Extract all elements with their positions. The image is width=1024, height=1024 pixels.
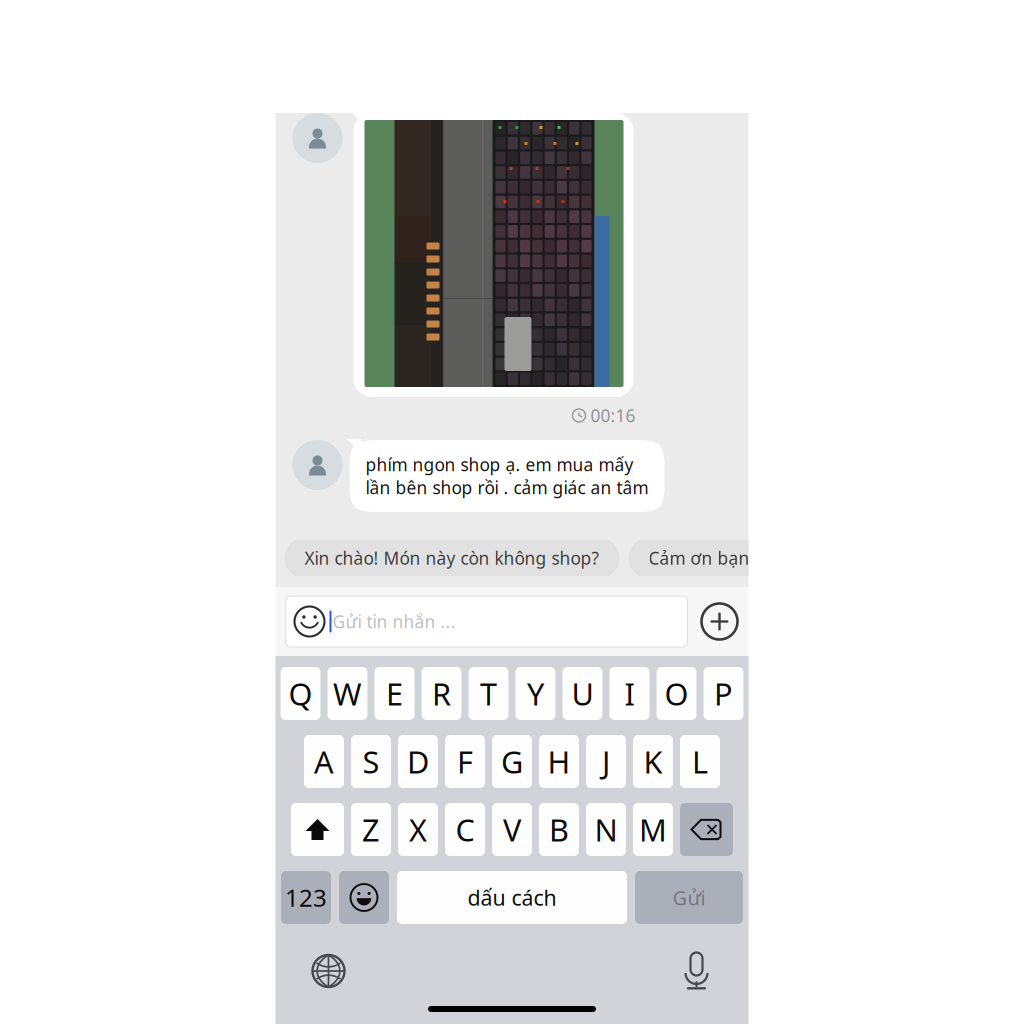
button[interactable]: W xyxy=(327,667,367,720)
button[interactable]: B xyxy=(539,803,579,856)
button[interactable]: D xyxy=(398,735,438,788)
staticText: W xyxy=(333,673,362,714)
staticText: H xyxy=(547,741,570,782)
staticText: Gửi tin nhắn ... xyxy=(332,610,455,633)
staticText: B xyxy=(549,809,569,850)
button[interactable]: L xyxy=(680,735,720,788)
staticText: F xyxy=(457,741,473,782)
button[interactable]: C xyxy=(445,803,485,856)
button[interactable]: Gửi xyxy=(635,871,743,924)
button[interactable]: O xyxy=(656,667,696,720)
staticText: T xyxy=(480,673,497,714)
staticText: S xyxy=(362,741,379,782)
button[interactable]: E xyxy=(374,667,414,720)
staticText: V xyxy=(503,809,521,850)
button[interactable]: 123 xyxy=(281,871,331,924)
button[interactable]: K xyxy=(633,735,673,788)
button[interactable]: X xyxy=(398,803,438,856)
staticText: M xyxy=(639,809,667,850)
button[interactable]: H xyxy=(539,735,579,788)
button[interactable]: U xyxy=(562,667,602,720)
button[interactable]: I xyxy=(609,667,649,720)
staticText: O xyxy=(664,673,688,714)
button[interactable]: N xyxy=(586,803,626,856)
staticText: N xyxy=(594,809,617,850)
staticText: D xyxy=(407,741,429,782)
staticText: I xyxy=(624,673,634,714)
staticText: G xyxy=(501,741,523,782)
staticText: Cảm ơn bạn nhé xyxy=(648,546,786,569)
button[interactable]: dấu cách xyxy=(397,871,627,924)
button[interactable]: Q xyxy=(280,667,320,720)
button[interactable]: Y xyxy=(515,667,555,720)
staticText: Q xyxy=(288,673,312,714)
button[interactable]: Switch keyboard xyxy=(312,955,344,987)
button[interactable]: Xin chào! Món này còn không shop? xyxy=(284,537,619,578)
staticText: X xyxy=(409,809,427,850)
button[interactable]: R xyxy=(421,667,461,720)
button[interactable]: G xyxy=(492,735,532,788)
staticText: C xyxy=(455,809,474,850)
button[interactable]: Gửi tin nhắn ... xyxy=(285,596,687,647)
staticText: K xyxy=(643,741,662,782)
button[interactable]: T xyxy=(468,667,508,720)
button[interactable] xyxy=(339,871,389,924)
button[interactable]: P xyxy=(703,667,743,720)
staticText: E xyxy=(386,673,403,714)
button[interactable]: S xyxy=(351,735,391,788)
button[interactable]: Add attachment xyxy=(701,603,737,639)
button[interactable]: F xyxy=(445,735,485,788)
button[interactable]: J xyxy=(586,735,626,788)
staticText: phím ngon shop ạ. em mua mấy lần bên sho… xyxy=(365,453,648,499)
staticText: Y xyxy=(527,673,544,714)
staticText: L xyxy=(692,741,708,782)
button[interactable]: Cảm ơn bạn nhé xyxy=(628,537,806,578)
button[interactable]: A xyxy=(304,735,344,788)
button[interactable]: M xyxy=(633,803,673,856)
staticText: Gửi xyxy=(672,884,705,911)
staticText: Z xyxy=(362,809,380,850)
button[interactable] xyxy=(680,803,733,856)
staticText: R xyxy=(432,673,451,714)
staticText: 123 xyxy=(285,882,327,913)
button[interactable]: Dictation xyxy=(684,952,708,989)
staticText: 00:16 xyxy=(590,404,635,427)
staticText: Xin chào! Món này còn không shop? xyxy=(304,546,599,569)
staticText: A xyxy=(314,741,334,782)
staticText: J xyxy=(602,741,610,782)
button[interactable]: Z xyxy=(351,803,391,856)
staticText: dấu cách xyxy=(467,883,556,912)
button[interactable]: V xyxy=(492,803,532,856)
staticText: U xyxy=(571,673,593,714)
staticText: P xyxy=(714,673,733,714)
button[interactable] xyxy=(291,803,344,856)
